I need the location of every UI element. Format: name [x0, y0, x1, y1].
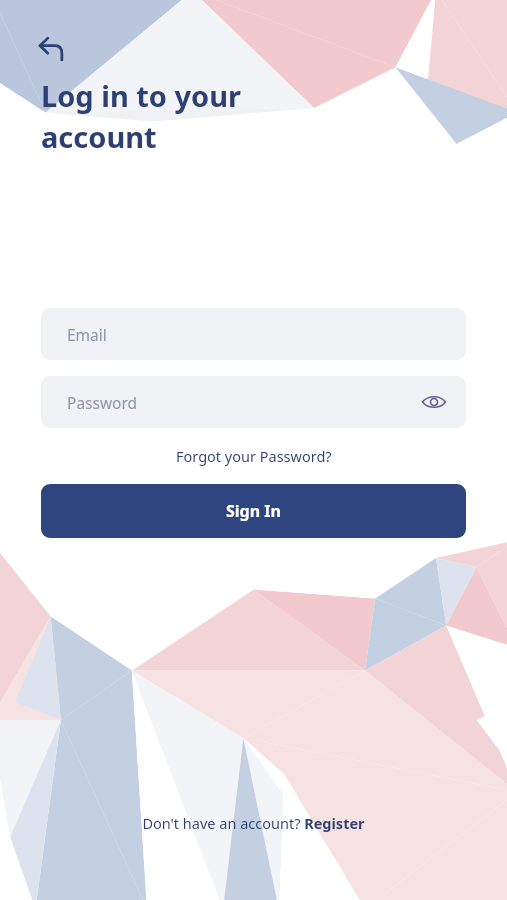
staticText: Sign In	[226, 500, 281, 522]
button[interactable]: Password	[41, 376, 466, 428]
button[interactable]: Back	[30, 26, 74, 70]
staticText: Email	[67, 324, 107, 345]
button[interactable]: Don't have an account? Register	[132, 809, 375, 837]
button[interactable]: Show password	[416, 384, 452, 420]
button[interactable]: Forgot your Password?	[168, 443, 340, 469]
staticText: Log in to your account	[41, 76, 242, 157]
staticText: Don't have an account? Register	[142, 813, 365, 833]
staticText: Forgot your Password?	[176, 446, 332, 466]
button[interactable]: Email	[41, 308, 466, 360]
button[interactable]: Sign In	[41, 484, 466, 538]
staticText: Password	[67, 392, 138, 413]
